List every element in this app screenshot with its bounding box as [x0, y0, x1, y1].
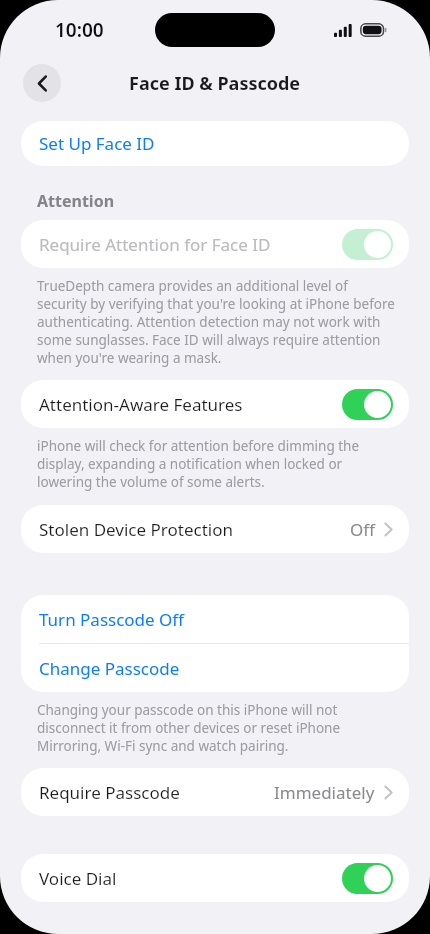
- button[interactable]: Back: [23, 64, 61, 102]
- button[interactable]: Change Passcode: [21, 644, 409, 692]
- staticText: Attention: [37, 190, 115, 212]
- button[interactable]: Turn Passcode Off: [21, 595, 409, 643]
- staticText: Require Attention for Face ID: [39, 233, 271, 256]
- staticText: iPhone will check for attention before d…: [37, 437, 399, 491]
- other: Attention-Aware Features: [342, 389, 393, 420]
- button[interactable]: Require Attention for Face ID: [21, 220, 409, 268]
- staticText: Change Passcode: [39, 657, 180, 680]
- staticText: Set Up Face ID: [39, 132, 155, 155]
- staticText: 10:00: [55, 17, 104, 43]
- staticText: Off: [350, 518, 375, 541]
- other: Require Attention for Face ID: [342, 229, 393, 260]
- staticText: Attention-Aware Features: [39, 393, 243, 416]
- button[interactable]: Attention-Aware Features: [21, 380, 409, 428]
- button[interactable]: Stolen Device Protection: [21, 505, 409, 553]
- button[interactable]: Voice Dial: [21, 854, 409, 902]
- staticText: Changing your passcode on this iPhone wi…: [37, 701, 399, 755]
- staticText: Require Passcode: [39, 781, 180, 804]
- staticText: Turn Passcode Off: [39, 608, 185, 631]
- staticText: Voice Dial: [39, 867, 117, 890]
- other: Voice Dial: [342, 863, 393, 894]
- staticText: Face ID & Passcode: [129, 71, 301, 96]
- staticText: Stolen Device Protection: [39, 518, 233, 541]
- button[interactable]: Set Up Face ID: [21, 121, 409, 166]
- button[interactable]: Require Passcode: [21, 768, 409, 816]
- staticText: TrueDepth camera provides an additional …: [37, 277, 399, 367]
- staticText: Immediately: [274, 781, 375, 804]
